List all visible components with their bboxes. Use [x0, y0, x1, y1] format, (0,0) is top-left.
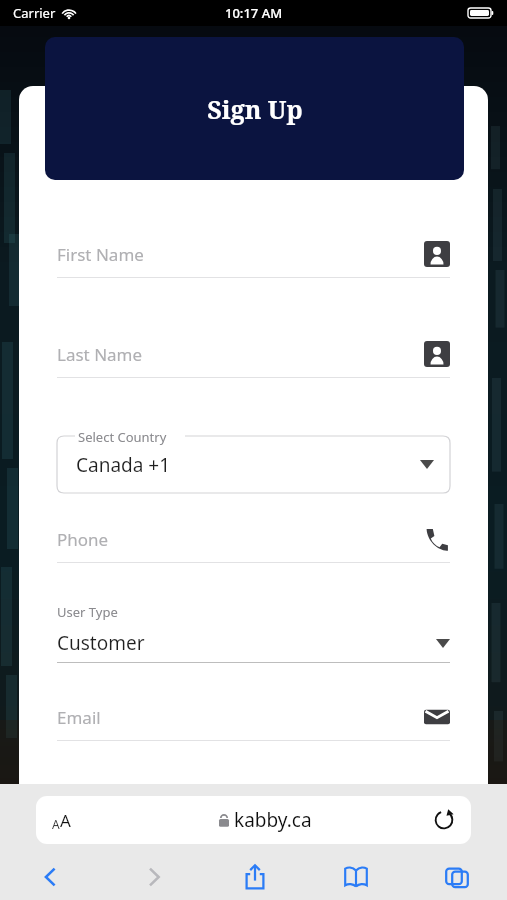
staticText: Email: [57, 706, 424, 729]
staticText: A: [60, 809, 71, 832]
button[interactable]: Share: [204, 856, 305, 898]
button[interactable]: Forward: [102, 856, 204, 898]
staticText: First Name: [57, 243, 424, 266]
button[interactable]: Last Name: [57, 338, 450, 378]
other: Phone field: [424, 526, 450, 552]
button[interactable]: Bookmarks: [305, 856, 406, 898]
staticText: 10:17 AM: [225, 4, 283, 22]
staticText: kabby.ca: [234, 807, 312, 833]
button[interactable]: Tabs: [406, 856, 507, 898]
button[interactable]: A: [36, 796, 471, 844]
other: Reload: [433, 809, 455, 831]
staticText: Canada +1: [76, 452, 420, 478]
staticText: A: [52, 816, 60, 832]
staticText: Last Name: [57, 343, 424, 366]
staticText: Carrier: [13, 4, 56, 22]
staticText: Customer: [57, 630, 436, 656]
button[interactable]: First Name: [57, 238, 450, 278]
button[interactable]: Phone: [57, 523, 450, 563]
staticText: Phone: [57, 528, 424, 551]
other: Email field: [424, 704, 450, 730]
button[interactable]: Email: [57, 701, 450, 741]
button[interactable]: Sign Up: [45, 37, 464, 180]
staticText: User Type: [57, 603, 118, 621]
staticText: Select Country: [78, 428, 167, 446]
button[interactable]: Select Country: [57, 428, 450, 493]
button[interactable]: User Type: [57, 603, 450, 663]
button[interactable]: Back: [0, 856, 102, 898]
staticText: Sign Up: [207, 92, 303, 126]
other: Name field: [424, 241, 450, 267]
other: Name field: [424, 341, 450, 367]
